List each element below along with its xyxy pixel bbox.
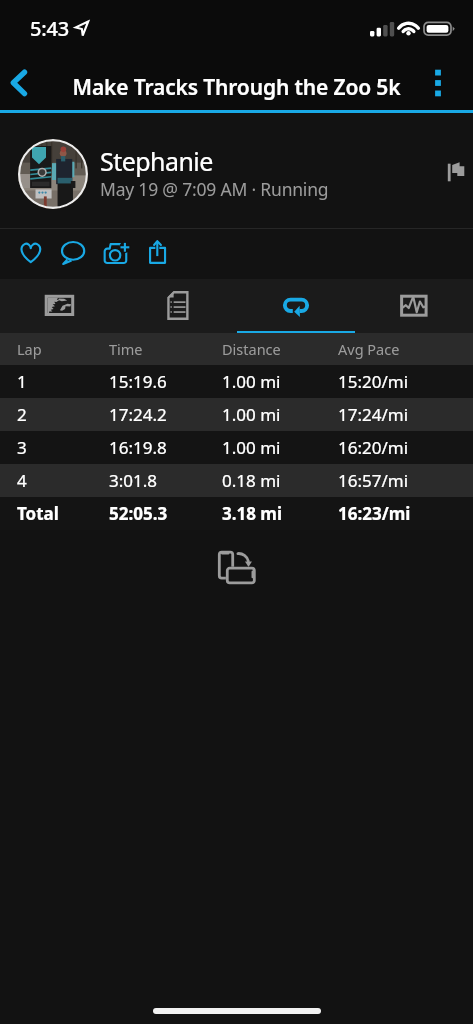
button[interactable]: More options bbox=[416, 59, 460, 107]
staticText: 3.18 mi bbox=[222, 502, 283, 525]
button[interactable]: Add photo bbox=[95, 230, 137, 276]
staticText: Total bbox=[17, 502, 59, 525]
staticText: Time bbox=[109, 339, 143, 359]
staticText: 16:23/mi bbox=[338, 502, 411, 525]
staticText: 17:24/mi bbox=[338, 403, 409, 426]
button[interactable]: 3 bbox=[0, 431, 473, 464]
staticText: 1.00 mi bbox=[222, 436, 281, 459]
staticText: 52:05.3 bbox=[109, 502, 168, 525]
staticText: 16:20/mi bbox=[338, 436, 409, 459]
staticText: 1.00 mi bbox=[222, 403, 281, 426]
button[interactable]: Rotate to landscape bbox=[214, 547, 260, 589]
button[interactable]: Share bbox=[137, 230, 179, 276]
staticText: Distance bbox=[222, 339, 281, 359]
staticText: 2 bbox=[17, 403, 27, 426]
button[interactable]: Profile photo bbox=[18, 139, 88, 209]
staticText: 17:24.2 bbox=[109, 403, 167, 426]
staticText: May 19 @ 7:09 AM · Running bbox=[100, 177, 329, 201]
button[interactable]: Laps bbox=[237, 279, 355, 334]
staticText: 3 bbox=[17, 436, 27, 459]
button[interactable]: Back bbox=[0, 59, 42, 107]
staticText: Stephanie bbox=[100, 144, 213, 178]
staticText: 1 bbox=[17, 370, 27, 393]
button[interactable]: Map bbox=[0, 279, 119, 334]
staticText: 0.18 mi bbox=[222, 469, 281, 492]
staticText: 5:43 bbox=[30, 15, 69, 42]
staticText: 16:57/mi bbox=[338, 469, 409, 492]
staticText: Make Tracks Through the Zoo 5k bbox=[0, 73, 473, 102]
button[interactable]: Flag activity bbox=[438, 154, 473, 192]
button[interactable]: Details bbox=[119, 279, 237, 334]
button[interactable]: 1 bbox=[0, 365, 473, 398]
button[interactable]: 4 bbox=[0, 464, 473, 497]
staticText: 15:20/mi bbox=[338, 370, 409, 393]
button[interactable]: Charts bbox=[355, 279, 473, 334]
staticText: 15:19.6 bbox=[109, 370, 167, 393]
button[interactable]: Comment bbox=[52, 230, 94, 276]
staticText: Lap bbox=[17, 339, 42, 359]
staticText: 16:19.8 bbox=[109, 436, 167, 459]
staticText: 3:01.8 bbox=[109, 469, 158, 492]
button[interactable]: 2 bbox=[0, 398, 473, 431]
staticText: 1.00 mi bbox=[222, 370, 281, 393]
button[interactable]: Like bbox=[10, 230, 52, 276]
staticText: 4 bbox=[17, 469, 27, 492]
staticText: Avg Pace bbox=[338, 339, 400, 359]
